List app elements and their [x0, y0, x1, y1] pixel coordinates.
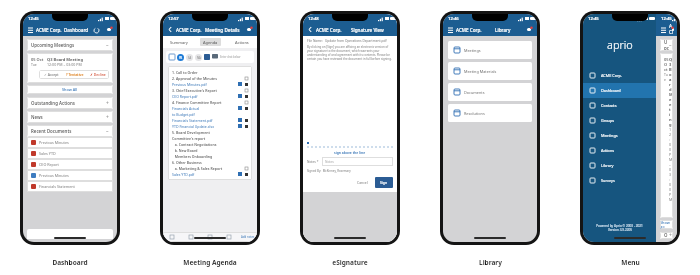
button[interactable]: Surveys: [583, 173, 656, 188]
staticText: Add notes: [241, 235, 255, 239]
button[interactable]: 05 Oct: [660, 53, 673, 218]
button[interactable]: Document: [169, 54, 175, 60]
button[interactable]: Meeting Materials: [448, 62, 532, 80]
button[interactable]: Agenda: [200, 38, 221, 46]
staticText: 05 Oct: [664, 57, 669, 72]
staticText: b. New Board: [172, 148, 198, 153]
button[interactable]: Sign: [375, 177, 393, 188]
staticText: Meetings: [601, 133, 618, 138]
button[interactable]: Outstanding Actions: [660, 232, 673, 239]
staticText: Members Onboarding: [172, 154, 213, 159]
button[interactable]: Menu: [447, 26, 454, 33]
button[interactable]: b. New Board: [172, 147, 248, 153]
staticText: ACME Corp.: [601, 73, 622, 78]
button[interactable]: Add: [204, 54, 210, 60]
button[interactable]: Cancel: [353, 178, 372, 187]
button[interactable]: Actions: [231, 38, 252, 46]
staticText: Show All: [62, 87, 78, 92]
staticText: Update from Operations Department.pdf: [325, 39, 387, 43]
button[interactable]: a. Marketing & Sales Report: [172, 165, 248, 171]
button[interactable]: Back: [307, 26, 314, 33]
button[interactable]: Sales YTD: [27, 148, 113, 159]
button[interactable]: Notes: [322, 157, 393, 166]
button[interactable]: Refresh: [92, 26, 100, 34]
button[interactable]: Resolutions: [448, 104, 532, 122]
button[interactable]: Previous Minutes.pdf: [172, 81, 248, 87]
button[interactable]: SA: [186, 54, 193, 61]
button[interactable]: Signature pad: [307, 147, 393, 148]
staticText: Outstanding Actions: [664, 232, 669, 239]
staticText: Meeting Agenda: [183, 258, 237, 267]
button[interactable]: Notifications: [244, 25, 253, 34]
staticText: Library: [479, 258, 502, 267]
button[interactable]: Meetings: [448, 41, 532, 59]
staticText: Groups: [601, 118, 615, 123]
button[interactable]: Previous Minutes: [27, 137, 113, 148]
button[interactable]: Financials Statement: [27, 181, 113, 192]
staticText: 12:45: [28, 16, 39, 22]
button[interactable]: ? Tentative: [63, 70, 86, 79]
button[interactable]: Menu: [27, 26, 34, 33]
button[interactable]: 3. Chief Executive's Report: [172, 87, 248, 93]
staticText: Dashboard: [64, 27, 89, 33]
button[interactable]: Contacts: [583, 98, 656, 113]
button[interactable]: Upcoming Meetings: [27, 39, 113, 51]
button[interactable]: 2. Approval of the Minutes: [172, 75, 248, 81]
button[interactable]: 4. Finance Committee Report: [172, 99, 248, 105]
button[interactable]: NA: [195, 54, 202, 61]
staticText: Outstanding Actions: [31, 100, 75, 106]
staticText: 12:45: [588, 16, 599, 22]
button[interactable]: Meetings: [583, 128, 656, 143]
button[interactable]: Actions: [583, 143, 656, 158]
button[interactable]: Show All: [27, 85, 113, 94]
button[interactable]: Groups: [583, 113, 656, 128]
button[interactable]: Financials Actual: [172, 105, 248, 111]
button[interactable]: YTD Financial Update.xlsx: [172, 123, 248, 129]
button[interactable]: 05 Oct: [27, 53, 113, 83]
button[interactable]: Notifications: [524, 25, 533, 34]
button[interactable]: Committee's report: [172, 135, 248, 141]
button[interactable]: Members Onboarding: [172, 153, 248, 159]
staticText: 12:00 PM – 03:00 PM: [47, 62, 82, 67]
button[interactable]: PB: [177, 54, 184, 61]
staticText: YTD Financial Update.xlsx: [172, 124, 215, 129]
button[interactable]: ✗ Decline: [86, 70, 109, 79]
button[interactable]: Sales YTD.pdf: [172, 171, 248, 177]
button[interactable]: Documents: [448, 83, 532, 101]
button[interactable]: 1. Call to Order: [172, 69, 248, 75]
staticText: Meeting Materials: [464, 69, 497, 74]
button[interactable]: Show All: [660, 220, 673, 229]
button[interactable]: ACME Corp.: [583, 68, 656, 83]
staticText: News: [31, 114, 43, 120]
button[interactable]: ✓ Accept: [39, 70, 63, 79]
button[interactable]: Outstanding Actions: [27, 97, 113, 109]
button[interactable]: Summary: [168, 38, 190, 46]
button[interactable]: Notifications: [104, 25, 113, 34]
button[interactable]: Dashboard: [583, 83, 656, 98]
button[interactable]: [181, 232, 200, 242]
staticText: sign above the line: [334, 150, 366, 155]
button[interactable]: 5. Board Development: [172, 129, 248, 135]
button[interactable]: Back: [167, 26, 174, 33]
staticText: File Name:: [307, 39, 325, 43]
button[interactable]: Previous Minutes: [27, 170, 113, 181]
staticText: Surveys: [601, 178, 615, 183]
button[interactable]: Chat: [212, 54, 218, 60]
button[interactable]: Upcoming Meetings: [660, 39, 673, 51]
button[interactable]: a. Contract Negotiations: [172, 141, 248, 147]
button[interactable]: to Budget.pdf: [172, 111, 248, 117]
staticText: Sales YTD.pdf: [172, 172, 195, 177]
button[interactable]: Financials Statement.pdf: [172, 117, 248, 123]
button[interactable]: 6. Other Business: [172, 159, 248, 165]
button[interactable]: [163, 232, 181, 242]
button[interactable]: CEO Report.pdf: [172, 93, 248, 99]
button[interactable]: CEO Report: [27, 159, 113, 170]
staticText: Cancel: [357, 180, 368, 185]
button[interactable]: News: [27, 111, 113, 123]
staticText: ACME Corp.: [456, 27, 482, 33]
button[interactable]: [219, 232, 238, 242]
button[interactable]: Library: [583, 158, 656, 173]
button[interactable]: [200, 232, 219, 242]
button[interactable]: Menu: [660, 26, 667, 33]
button[interactable]: Recent Documents: [27, 125, 113, 137]
